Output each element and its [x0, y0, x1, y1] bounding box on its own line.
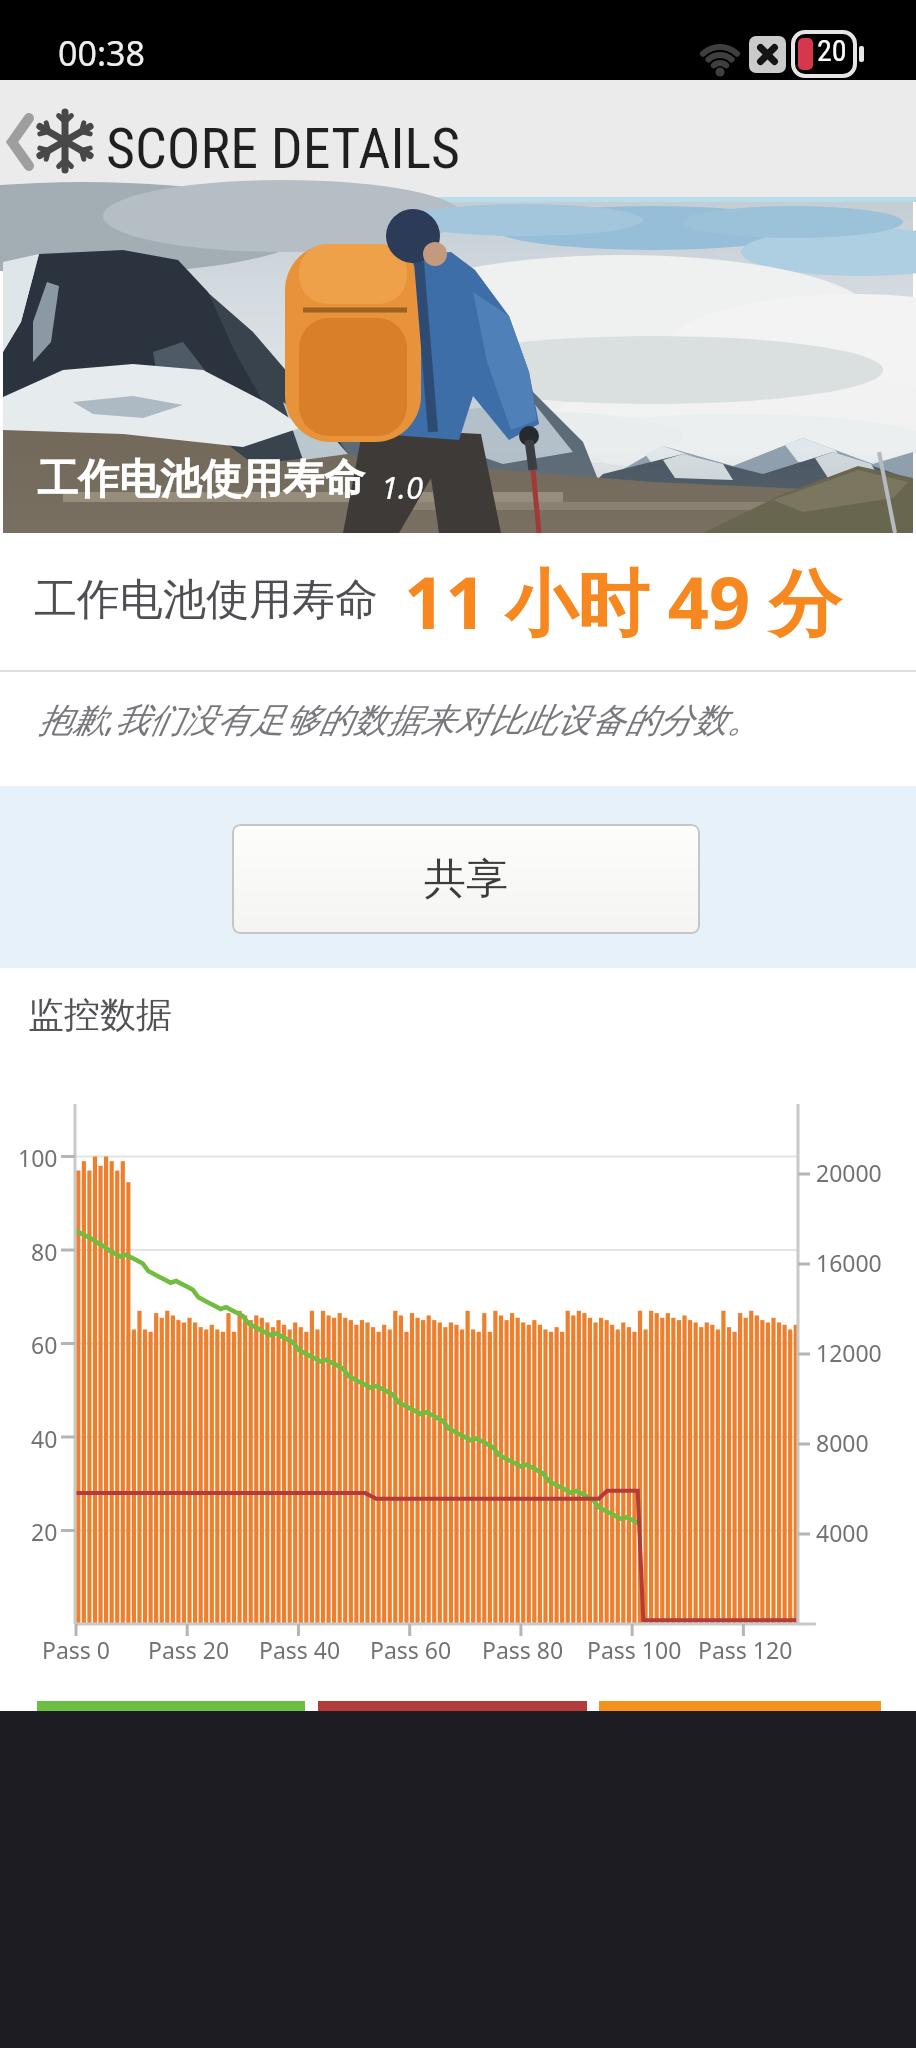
staticText: 60: [31, 1329, 58, 1360]
staticText: 80: [31, 1236, 58, 1267]
staticText: 16000: [816, 1247, 882, 1278]
staticText: 00:38: [58, 30, 145, 76]
staticText: 工作电池使用寿命: [37, 454, 365, 506]
staticText: 40: [31, 1423, 58, 1454]
button[interactable]: 工作电池使用寿命: [0, 533, 916, 672]
button[interactable]: 100: [0, 1082, 916, 1710]
staticText: 4000: [816, 1517, 869, 1548]
staticText: 11 小时 49 分: [404, 552, 841, 650]
staticText: Pass 100: [587, 1634, 682, 1665]
button[interactable]: 共享: [232, 824, 700, 934]
staticText: 1.0: [381, 466, 424, 508]
staticText: 共享: [424, 853, 508, 906]
staticText: Pass 120: [698, 1634, 793, 1665]
staticText: Pass 80: [482, 1634, 564, 1665]
staticText: 20: [817, 33, 847, 68]
staticText: Pass 40: [259, 1634, 341, 1665]
staticText: Pass 0: [42, 1634, 110, 1665]
staticText: 监控数据: [28, 992, 172, 1037]
staticText: 20000: [816, 1157, 882, 1188]
staticText: SCORE DETAILS: [106, 116, 461, 182]
staticText: 工作电池使用寿命: [34, 573, 378, 627]
staticText: 20: [31, 1516, 58, 1547]
staticText: 12000: [816, 1337, 882, 1368]
staticText: 抱歉,我们没有足够的数据来对比此设备的分数。: [38, 696, 761, 742]
staticText: 100: [18, 1142, 58, 1173]
staticText: 8000: [816, 1427, 869, 1458]
button[interactable]: 工作电池使用寿命: [3, 202, 913, 533]
staticText: Pass 60: [370, 1634, 452, 1665]
button[interactable]: [8, 116, 34, 168]
staticText: Pass 20: [148, 1634, 230, 1665]
